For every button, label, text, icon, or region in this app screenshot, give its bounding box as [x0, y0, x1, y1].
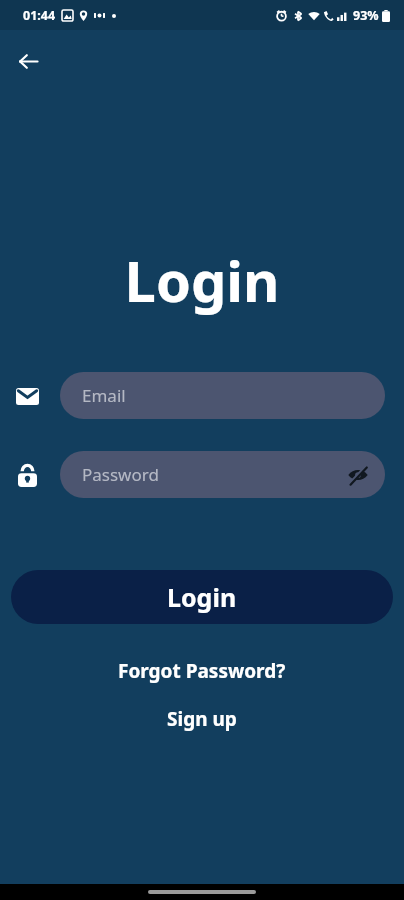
staticText: 93%: [353, 7, 379, 24]
button[interactable]: Show password: [343, 460, 373, 490]
button[interactable]: Password: [60, 451, 385, 498]
button[interactable]: Sign up: [0, 702, 404, 736]
button[interactable]: Back: [11, 44, 45, 78]
button[interactable]: Email: [60, 372, 385, 419]
staticText: Login: [167, 580, 237, 614]
staticText: Password: [82, 463, 159, 486]
staticText: Login: [0, 242, 404, 318]
staticText: Forgot Password?: [118, 658, 286, 684]
staticText: Email: [82, 384, 126, 407]
button[interactable]: Login: [11, 570, 393, 624]
staticText: Sign up: [167, 706, 237, 732]
staticText: 01:44: [23, 7, 56, 24]
button[interactable]: Forgot Password?: [0, 654, 404, 688]
